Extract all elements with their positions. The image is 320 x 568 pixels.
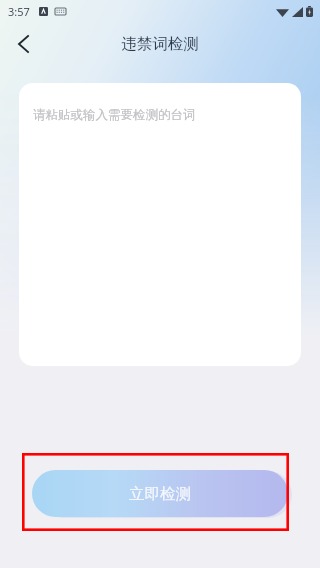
staticText: 立即检测 xyxy=(129,484,191,504)
button[interactable]: 请粘贴或输入需要检测的台词 xyxy=(19,83,301,366)
staticText: 违禁词检测 xyxy=(121,34,199,54)
button[interactable]: 立即检测 xyxy=(32,470,288,517)
staticText: 3:57 xyxy=(8,4,30,19)
staticText: 请粘贴或输入需要检测的台词 xyxy=(33,107,196,123)
button[interactable]: Back xyxy=(6,27,40,61)
